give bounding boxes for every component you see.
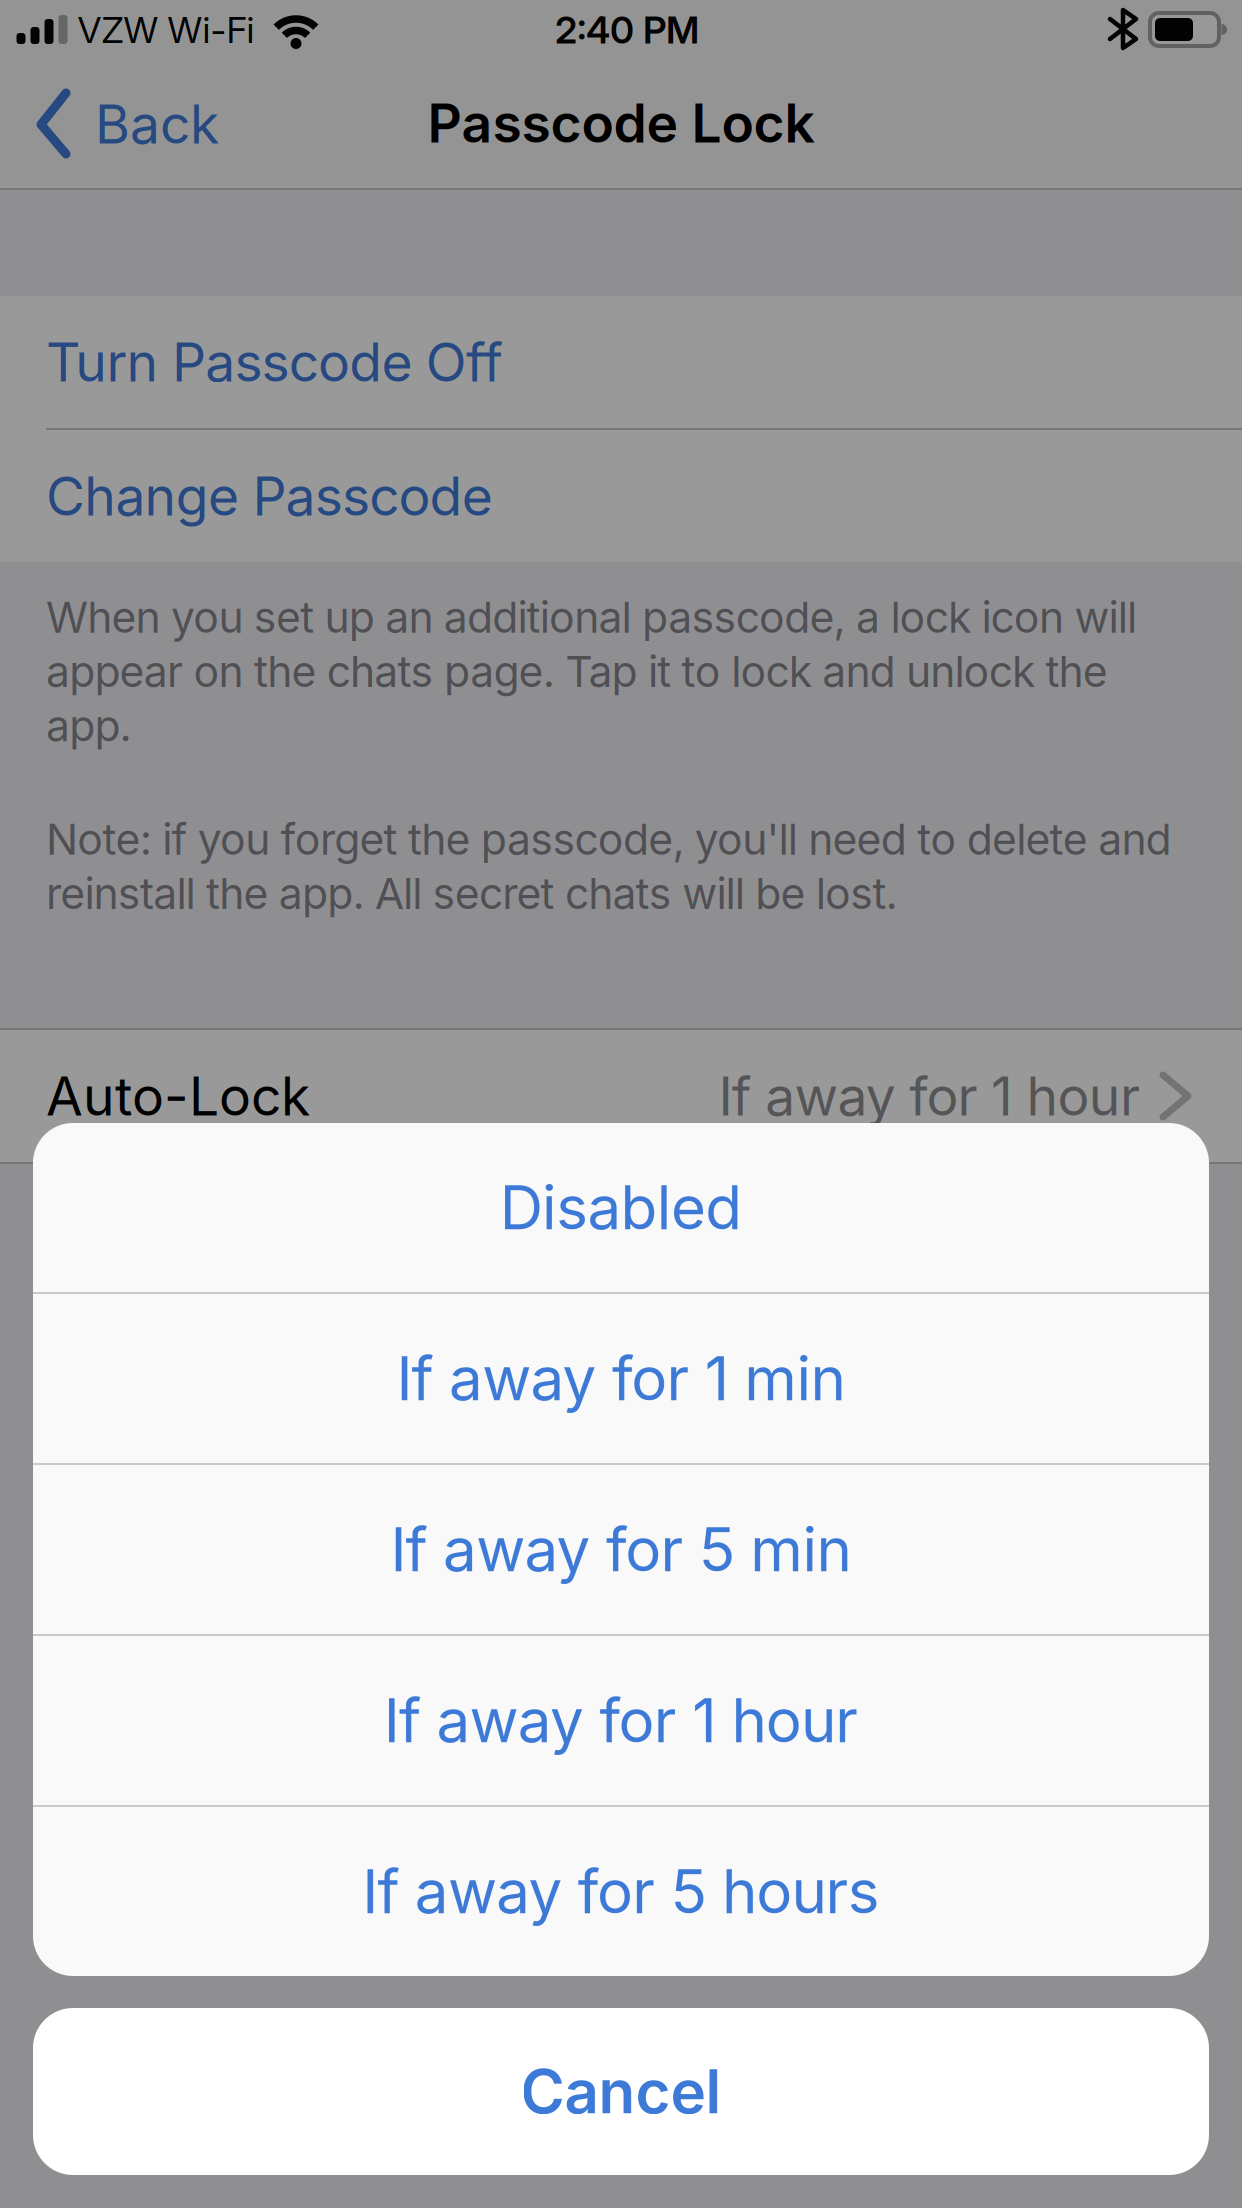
staticText: Disabled bbox=[500, 1172, 742, 1243]
staticText: Cancel bbox=[520, 2056, 721, 2127]
staticText: If away for 5 hours bbox=[362, 1856, 880, 1927]
button[interactable]: Auto-Lock bbox=[0, 1030, 1242, 1162]
staticText: app. bbox=[46, 701, 132, 751]
staticText: If away for 1 hour bbox=[384, 1685, 858, 1756]
staticText: When you set up an additional passcode, … bbox=[46, 592, 1137, 642]
staticText: Turn Passcode Off bbox=[46, 330, 503, 393]
button[interactable]: Turn Passcode Off bbox=[0, 296, 1242, 428]
staticText: If away for 1 min bbox=[396, 1343, 846, 1414]
staticText: Back bbox=[95, 92, 219, 155]
button[interactable]: If away for 1 hour bbox=[33, 1636, 1209, 1805]
staticText: Note: if you forget the passcode, you'll… bbox=[46, 814, 1172, 864]
staticText: Change Passcode bbox=[46, 464, 493, 527]
button[interactable]: Cancel bbox=[33, 2008, 1209, 2175]
staticText: 2:40 PM bbox=[555, 8, 699, 52]
staticText: VZW Wi-Fi bbox=[77, 9, 254, 51]
button[interactable]: If away for 5 hours bbox=[33, 1807, 1209, 1976]
staticText: If away for 5 min bbox=[390, 1514, 852, 1585]
staticText: appear on the chats page. Tap it to lock… bbox=[46, 646, 1108, 697]
staticText: reinstall the app. All secret chats will… bbox=[46, 868, 898, 919]
button[interactable]: Change Passcode bbox=[0, 430, 1242, 562]
staticText: Passcode Lock bbox=[427, 91, 814, 154]
button[interactable]: If away for 5 min bbox=[33, 1465, 1209, 1634]
staticText: If away for 1 hour bbox=[719, 1064, 1140, 1127]
button[interactable]: Back bbox=[0, 59, 260, 189]
button[interactable]: Disabled bbox=[33, 1123, 1209, 1292]
button[interactable]: If away for 1 min bbox=[33, 1294, 1209, 1463]
staticText: Auto-Lock bbox=[46, 1064, 310, 1127]
